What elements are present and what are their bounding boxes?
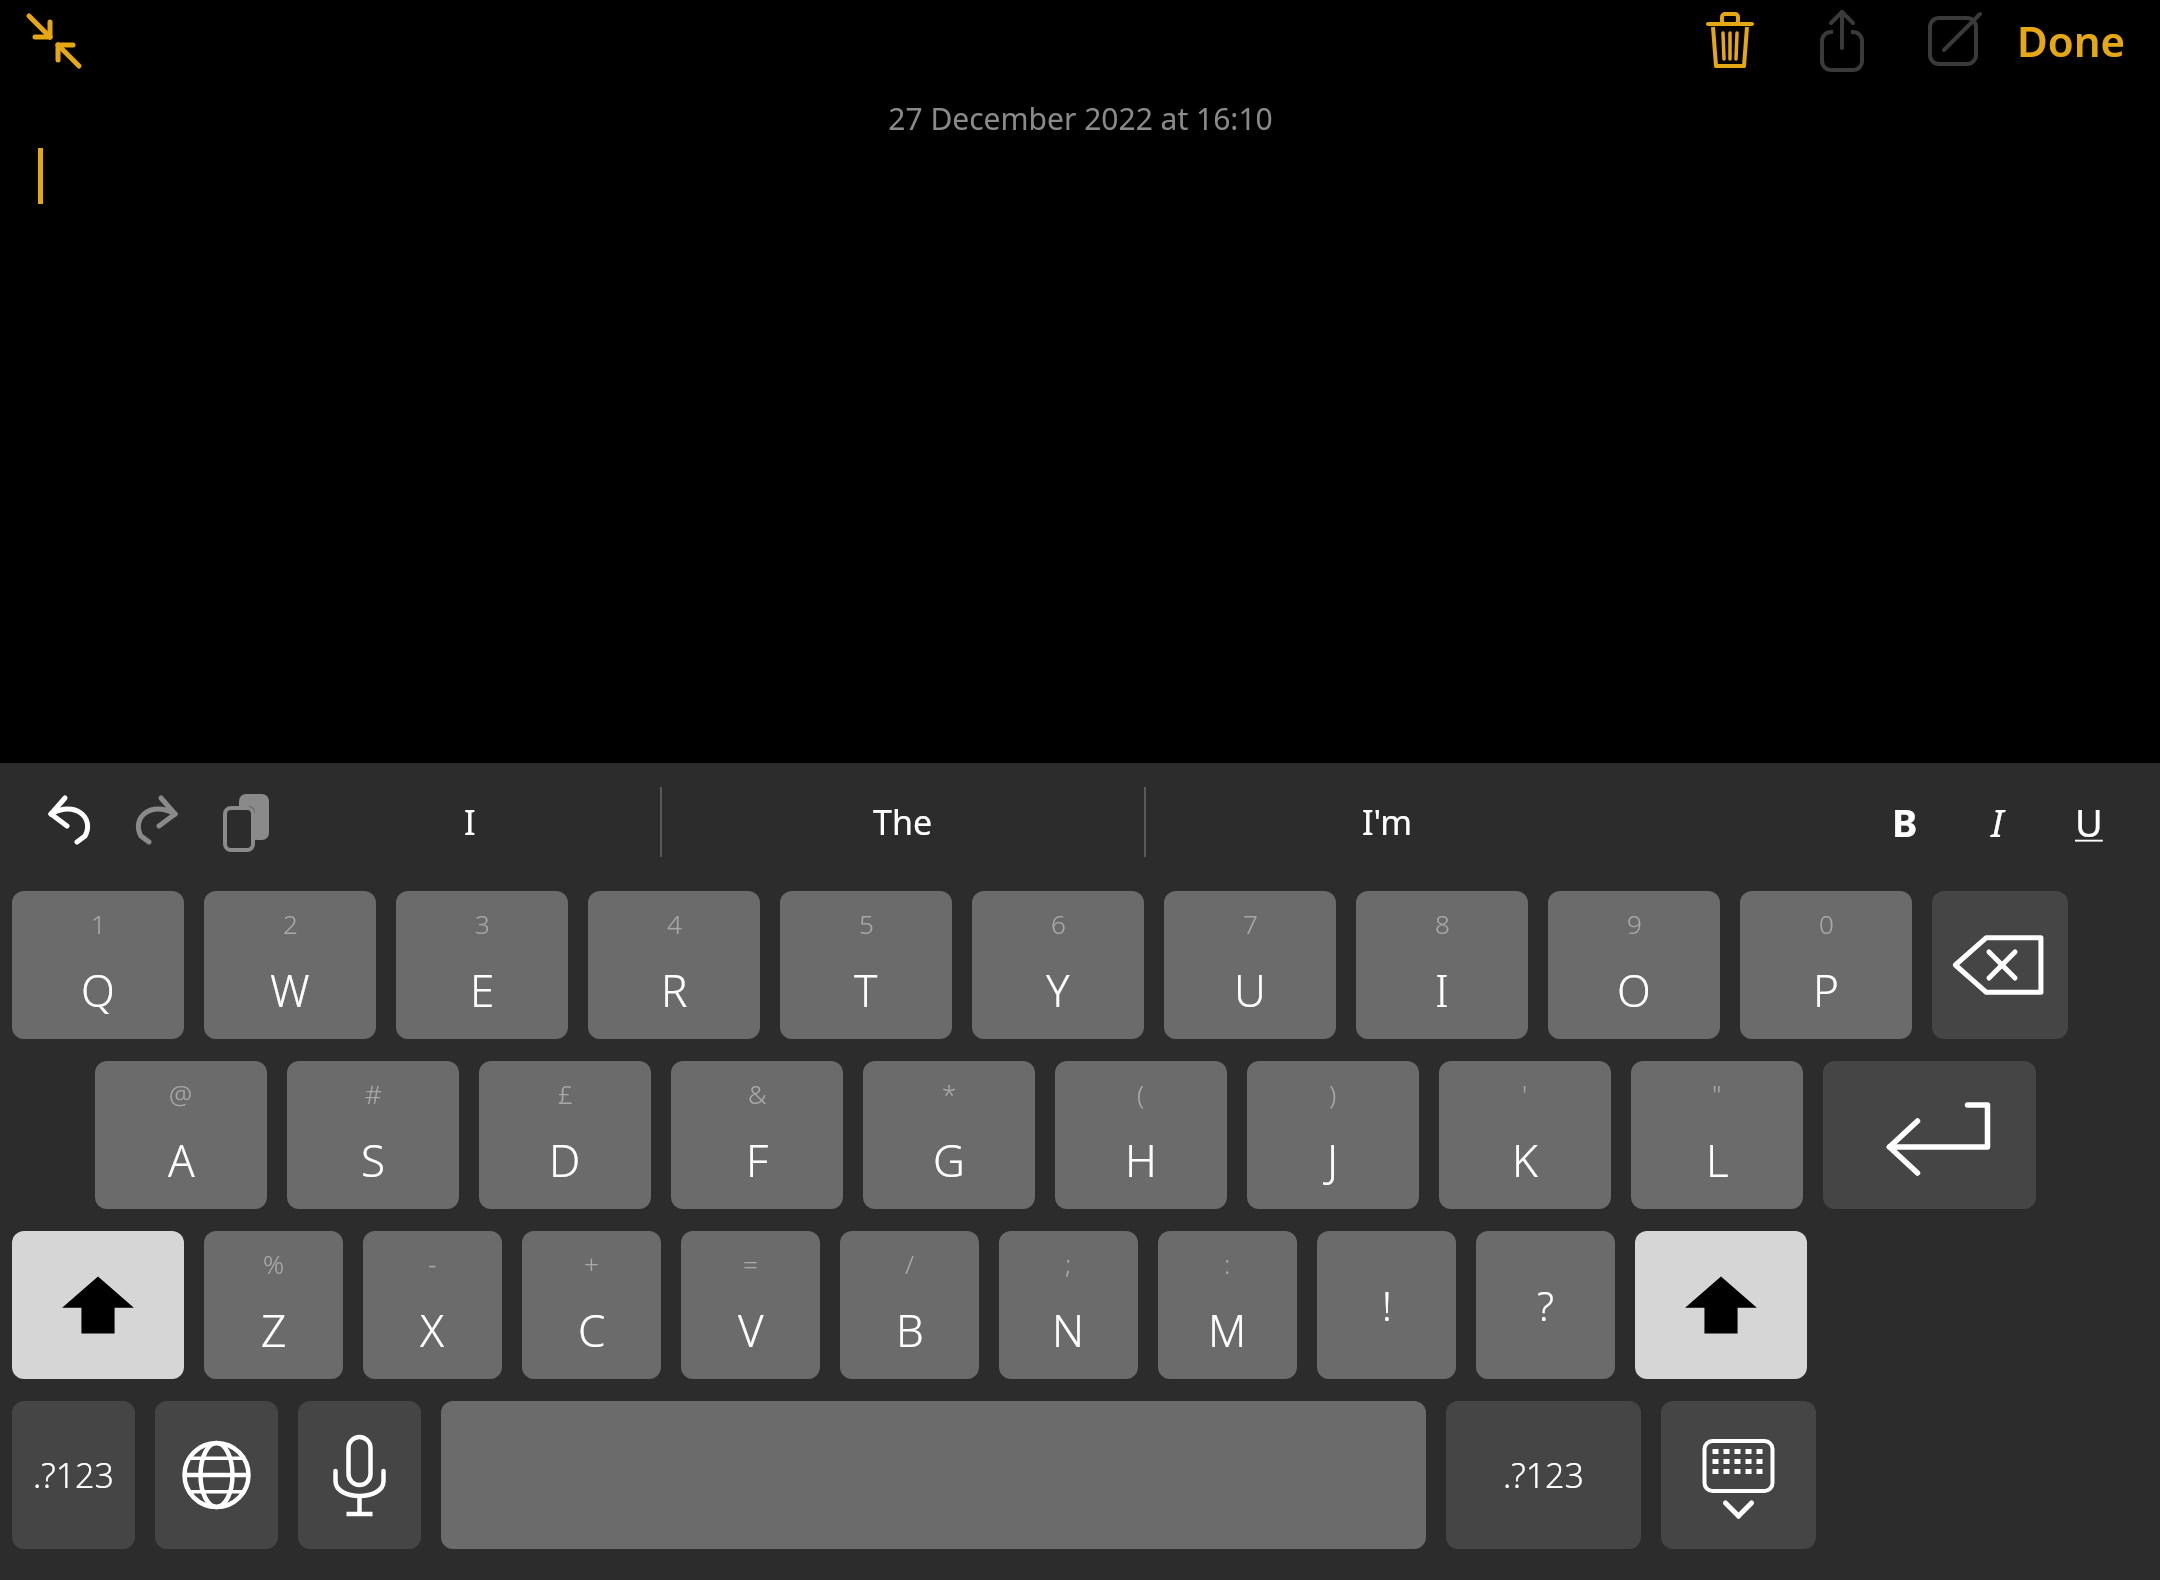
- button[interactable]: Shift: [12, 1231, 184, 1379]
- staticText: W: [270, 960, 310, 1020]
- button[interactable]: Backspace: [1932, 891, 2068, 1039]
- button[interactable]: The: [662, 763, 1144, 880]
- staticText: ": [1712, 1076, 1722, 1111]
- button[interactable]: Paste: [206, 783, 284, 861]
- button[interactable]: 6: [972, 891, 1144, 1039]
- staticText: B: [896, 1300, 924, 1360]
- button[interactable]: @: [95, 1061, 267, 1209]
- staticText: 0: [1819, 906, 1834, 941]
- button[interactable]: ": [1631, 1061, 1803, 1209]
- staticText: 6: [1051, 906, 1066, 941]
- staticText: K: [1512, 1130, 1538, 1190]
- staticText: V: [738, 1300, 764, 1360]
- staticText: 2: [283, 906, 298, 941]
- staticText: H: [1125, 1130, 1157, 1190]
- button[interactable]: 2: [204, 891, 376, 1039]
- button[interactable]: (: [1055, 1061, 1227, 1209]
- button[interactable]: I'm: [1146, 763, 1628, 880]
- staticText: .?123: [1503, 1452, 1584, 1498]
- button[interactable]: Redo: [118, 783, 196, 861]
- button[interactable]: Collapse: [16, 3, 90, 77]
- button[interactable]: ?: [1476, 1231, 1615, 1379]
- staticText: ): [1329, 1076, 1337, 1111]
- button[interactable]: 7: [1164, 891, 1336, 1039]
- staticText: G: [933, 1130, 965, 1190]
- button[interactable]: *: [863, 1061, 1035, 1209]
- staticText: P: [1813, 960, 1839, 1020]
- staticText: !: [1382, 1278, 1392, 1332]
- button[interactable]: Shift: [1635, 1231, 1807, 1379]
- staticText: A: [168, 1130, 195, 1190]
- button[interactable]: #: [287, 1061, 459, 1209]
- staticText: @: [169, 1076, 193, 1111]
- button[interactable]: ;: [999, 1231, 1138, 1379]
- staticText: Z: [261, 1300, 287, 1360]
- button[interactable]: New note: [1911, 0, 1997, 80]
- staticText: M: [1208, 1300, 1247, 1360]
- staticText: 1: [91, 906, 106, 941]
- staticText: 3: [475, 906, 490, 941]
- staticText: .?123: [33, 1452, 114, 1498]
- staticText: :: [1224, 1246, 1231, 1281]
- button[interactable]: 5: [780, 891, 952, 1039]
- button[interactable]: B: [1870, 787, 1940, 857]
- staticText: 27 December 2022 at 16:10: [888, 98, 1273, 139]
- button[interactable]: .?123: [1446, 1401, 1641, 1549]
- button[interactable]: Next keyboard: [155, 1401, 278, 1549]
- button[interactable]: /: [840, 1231, 979, 1379]
- staticText: Y: [1046, 960, 1070, 1020]
- staticText: 8: [1435, 906, 1450, 941]
- button[interactable]: I: [280, 763, 660, 880]
- staticText: 5: [859, 906, 874, 941]
- button[interactable]: Undo: [30, 783, 108, 861]
- button[interactable]: &: [671, 1061, 843, 1209]
- staticText: J: [1327, 1130, 1339, 1190]
- button[interactable]: %: [204, 1231, 343, 1379]
- staticText: ?: [1537, 1278, 1554, 1332]
- staticText: (: [1137, 1076, 1145, 1111]
- staticText: +: [584, 1246, 599, 1281]
- button[interactable]: 8: [1356, 891, 1528, 1039]
- button[interactable]: Share: [1799, 0, 1885, 80]
- staticText: 9: [1627, 906, 1642, 941]
- button[interactable]: !: [1317, 1231, 1456, 1379]
- staticText: I: [464, 799, 476, 845]
- staticText: &: [748, 1076, 767, 1111]
- button[interactable]: ): [1247, 1061, 1419, 1209]
- staticText: O: [1617, 960, 1651, 1020]
- staticText: ;: [1065, 1246, 1072, 1281]
- button[interactable]: 3: [396, 891, 568, 1039]
- staticText: S: [361, 1130, 386, 1190]
- staticText: B: [1892, 796, 1918, 848]
- button[interactable]: ': [1439, 1061, 1611, 1209]
- button[interactable]: Delete: [1687, 0, 1773, 80]
- staticText: Q: [81, 960, 115, 1020]
- button[interactable]: Dictation: [298, 1401, 421, 1549]
- button[interactable]: 1: [12, 891, 184, 1039]
- button[interactable]: U: [2054, 787, 2124, 857]
- staticText: 4: [667, 906, 682, 941]
- button[interactable]: -: [363, 1231, 502, 1379]
- button[interactable]: £: [479, 1061, 651, 1209]
- staticText: £: [558, 1076, 573, 1111]
- staticText: R: [661, 960, 688, 1020]
- button[interactable]: Done: [2017, 12, 2126, 69]
- button[interactable]: :: [1158, 1231, 1297, 1379]
- staticText: /: [905, 1246, 915, 1281]
- button[interactable]: Hide keyboard: [1661, 1401, 1816, 1549]
- button[interactable]: .?123: [12, 1401, 135, 1549]
- button[interactable]: 9: [1548, 891, 1720, 1039]
- staticText: Done: [2017, 12, 2126, 69]
- staticText: 7: [1243, 906, 1258, 941]
- button[interactable]: 0: [1740, 891, 1912, 1039]
- staticText: E: [470, 960, 495, 1020]
- staticText: *: [942, 1076, 957, 1111]
- button[interactable]: +: [522, 1231, 661, 1379]
- button[interactable]: 4: [588, 891, 760, 1039]
- button[interactable]: I: [1962, 787, 2032, 857]
- staticText: D: [549, 1130, 581, 1190]
- button[interactable]: Return: [1823, 1061, 2036, 1209]
- button[interactable]: =: [681, 1231, 820, 1379]
- staticText: F: [746, 1130, 769, 1190]
